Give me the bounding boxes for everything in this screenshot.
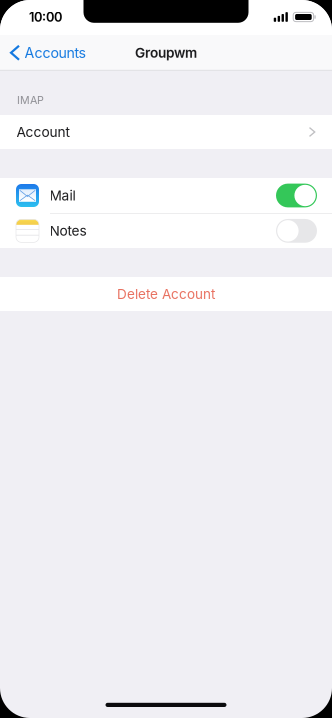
staticText: Delete Account [117,286,215,302]
button[interactable]: Notes [0,214,332,248]
staticText: 10:00 [29,9,62,25]
staticText: Account [16,124,69,140]
button[interactable]: Accounts [0,35,93,70]
button[interactable]: Account [0,115,332,149]
button[interactable]: Mail [0,178,332,213]
staticText: Notes [49,223,86,239]
staticText: Accounts [24,44,85,61]
staticText: Mail [49,187,75,204]
button[interactable]: Delete Account [0,277,332,311]
staticText: Groupwm [135,44,197,61]
staticText: IMAP [17,94,44,106]
